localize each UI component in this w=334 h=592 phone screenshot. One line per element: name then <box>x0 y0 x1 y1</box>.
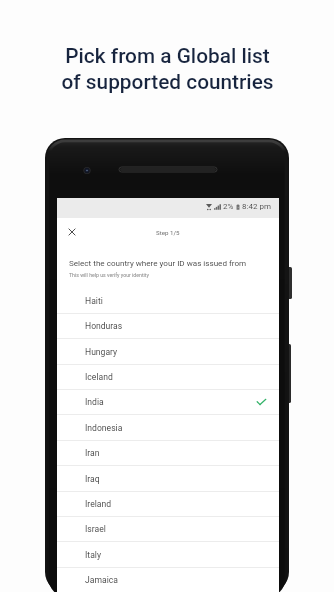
staticText: Haiti <box>85 296 103 306</box>
button[interactable]: Iceland <box>57 365 279 390</box>
button[interactable]: Indonesia <box>57 416 279 441</box>
staticText: Iran <box>85 448 100 458</box>
button[interactable]: India <box>57 390 279 415</box>
staticText: This will help us verify your identity <box>69 272 150 278</box>
button[interactable]: Iraq <box>57 467 279 492</box>
staticText: Honduras <box>85 321 123 331</box>
staticText: Ireland <box>85 499 112 509</box>
button[interactable]: Israel <box>57 517 279 542</box>
button[interactable]: Iran <box>57 441 279 466</box>
button[interactable]: Honduras <box>57 314 279 339</box>
staticText: Jamaica <box>85 575 118 585</box>
button[interactable]: Haiti <box>57 289 279 314</box>
staticText: Israel <box>85 524 106 534</box>
staticText: Iraq <box>85 474 100 484</box>
button[interactable]: Ireland <box>57 492 279 517</box>
button[interactable]: Close <box>64 224 80 240</box>
staticText: Pick from a Global list of supported cou… <box>61 44 274 94</box>
staticText: Iceland <box>85 372 113 382</box>
staticText: Indonesia <box>85 423 123 433</box>
staticText: Select the country where your ID was iss… <box>69 258 247 267</box>
staticText: 2% <box>223 202 234 211</box>
staticText: Step 1/5 <box>156 229 180 236</box>
staticText: 8:42 pm <box>242 202 271 211</box>
button[interactable]: Jamaica <box>57 568 279 592</box>
button[interactable]: Hungary <box>57 340 279 365</box>
button[interactable]: Italy <box>57 543 279 568</box>
staticText: Italy <box>85 550 101 560</box>
staticText: Hungary <box>85 347 118 357</box>
staticText: India <box>85 397 104 407</box>
